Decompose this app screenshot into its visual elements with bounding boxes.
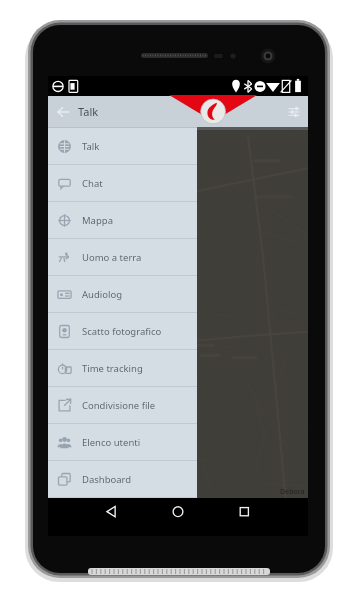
button[interactable]: Settings — [280, 96, 308, 127]
staticText: Elenco utenti — [82, 436, 141, 449]
staticText: Debora — [280, 487, 305, 497]
button[interactable]: Elenco utenti — [48, 424, 197, 460]
button[interactable]: Uomo a terra — [48, 239, 197, 275]
staticText: Uomo a terra — [82, 251, 142, 264]
staticText: Scatto fotografico — [82, 325, 162, 338]
button[interactable]: Condivisione file — [48, 387, 197, 423]
staticText: Time tracking — [82, 362, 143, 375]
staticText: Dashboard — [82, 473, 132, 486]
button[interactable]: Scatto fotografico — [48, 313, 197, 349]
staticText: Mappa — [82, 214, 113, 227]
staticText: Condivisione file — [82, 399, 156, 412]
button[interactable]: Mappa — [48, 202, 197, 238]
staticText: Talk — [82, 140, 100, 153]
staticText: Audiolog — [82, 288, 123, 301]
button[interactable]: Talk — [48, 128, 197, 164]
button[interactable]: Chat — [48, 165, 197, 201]
button[interactable]: Dashboard — [48, 461, 197, 497]
button[interactable]: Time tracking — [48, 350, 197, 386]
button[interactable]: Audiolog — [48, 276, 197, 312]
staticText: Chat — [82, 177, 103, 190]
button[interactable]: Talk — [78, 104, 99, 119]
button[interactable]: Back — [48, 96, 78, 127]
